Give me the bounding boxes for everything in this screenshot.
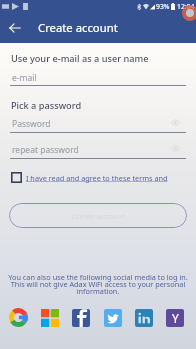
button[interactable]: Sign in with Yahoo xyxy=(165,308,184,327)
staticText: Password xyxy=(12,118,51,130)
staticText: Use your e-mail as a user name xyxy=(11,52,149,65)
button[interactable]: Sign in with Facebook xyxy=(71,308,90,327)
button[interactable]: I have read and agree to these terms and xyxy=(11,170,168,185)
staticText: Create account xyxy=(72,211,125,221)
staticText: I have read and agree to these terms and xyxy=(26,173,168,183)
button[interactable]: Sign in with LinkedIn xyxy=(134,308,153,327)
button[interactable]: Sign in with Microsoft xyxy=(40,308,59,327)
staticText: Create account xyxy=(38,20,118,35)
staticText: 12:04 xyxy=(177,2,195,11)
staticText: repeat password xyxy=(12,144,79,156)
button[interactable]: Back xyxy=(4,17,26,39)
staticText: 93% xyxy=(156,2,170,11)
staticText: You can also use the following social me… xyxy=(8,272,188,296)
button[interactable]: Create account xyxy=(9,203,187,228)
staticText: Y xyxy=(172,310,179,326)
staticText: e-mail xyxy=(12,72,37,84)
button[interactable]: Sign in with Google xyxy=(9,308,28,327)
staticText: Pick a password xyxy=(11,99,82,112)
button[interactable]: Sign in with Twitter xyxy=(103,308,122,327)
button[interactable]: Floating overlay button xyxy=(182,5,196,21)
